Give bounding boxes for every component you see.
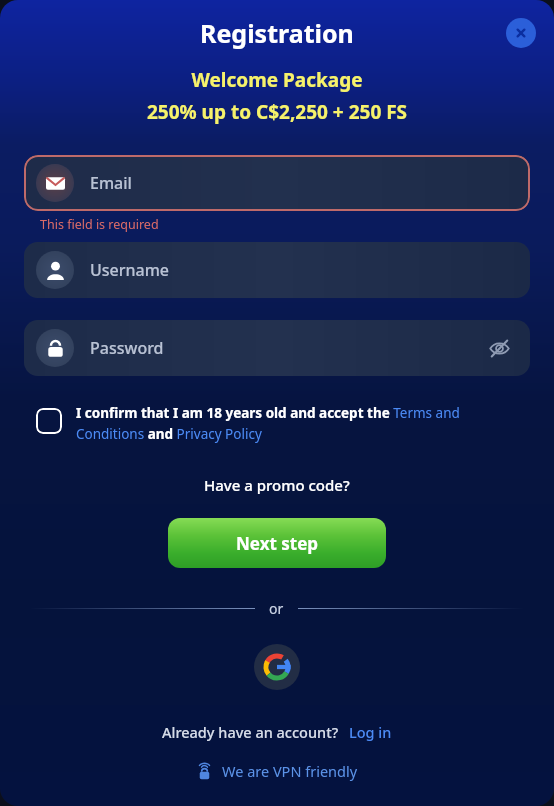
staticText: 250% up to C$2,250 + 250 FS	[0, 99, 554, 125]
button[interactable]: Password	[24, 320, 530, 376]
staticText: I confirm that I am 18 years old and acc…	[76, 404, 530, 443]
staticText: or	[269, 599, 284, 618]
staticText: Email	[90, 172, 132, 194]
button[interactable]: Have a promo code?	[200, 471, 354, 499]
button[interactable]: Show password	[482, 331, 516, 365]
button[interactable]: I confirm that I am 18 years old and acc…	[24, 404, 530, 443]
staticText: Log in	[349, 722, 392, 742]
staticText: Registration	[200, 16, 354, 50]
button[interactable]: We are VPN friendly	[196, 761, 358, 781]
button[interactable]: Next step	[168, 518, 386, 568]
button[interactable]: Username	[24, 242, 530, 298]
staticText: Have a promo code?	[204, 475, 350, 495]
button[interactable]: Log in	[349, 722, 392, 742]
button[interactable]: Sign in with Google	[254, 644, 300, 690]
staticText: We are VPN friendly	[222, 761, 358, 781]
button[interactable]: Close	[506, 18, 536, 48]
staticText: Username	[90, 259, 170, 281]
staticText: This field is required	[40, 216, 159, 233]
staticText: Password	[90, 337, 164, 359]
button[interactable]: Email	[24, 155, 530, 211]
staticText: Already have an account?	[162, 722, 339, 742]
staticText: Next step	[236, 532, 319, 555]
staticText: Welcome Package	[0, 67, 554, 93]
